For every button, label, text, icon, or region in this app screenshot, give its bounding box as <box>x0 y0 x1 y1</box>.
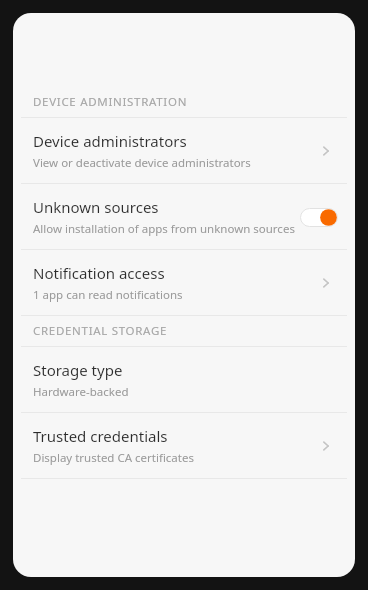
staticText: Storage type <box>33 360 123 380</box>
button[interactable]: Toggle unknown sources <box>297 201 341 233</box>
staticText: View or deactivate device administrators <box>33 155 251 171</box>
staticText: Notification access <box>33 263 165 283</box>
button[interactable]: Open device administrators <box>311 136 341 166</box>
staticText: Allow installation of apps from unknown … <box>33 221 295 237</box>
staticText: Device administrators <box>33 131 187 151</box>
button[interactable]: Unknown sources <box>13 184 355 249</box>
button[interactable]: Open trusted credentials <box>311 431 341 461</box>
button[interactable]: Device administrators <box>13 118 355 183</box>
staticText: 1 app can read notifications <box>33 287 183 303</box>
staticText: CREDENTIAL STORAGE <box>33 323 168 339</box>
button[interactable]: Trusted credentials <box>13 413 355 478</box>
staticText: Trusted credentials <box>33 426 168 446</box>
staticText: Hardware-backed <box>33 384 129 400</box>
staticText: DEVICE ADMINISTRATION <box>33 94 188 110</box>
staticText: Display trusted CA certificates <box>33 450 194 466</box>
button[interactable]: Open notification access <box>311 268 341 298</box>
staticText: Unknown sources <box>33 197 159 217</box>
button[interactable]: Notification access <box>13 250 355 315</box>
button[interactable]: Storage type <box>13 347 355 412</box>
